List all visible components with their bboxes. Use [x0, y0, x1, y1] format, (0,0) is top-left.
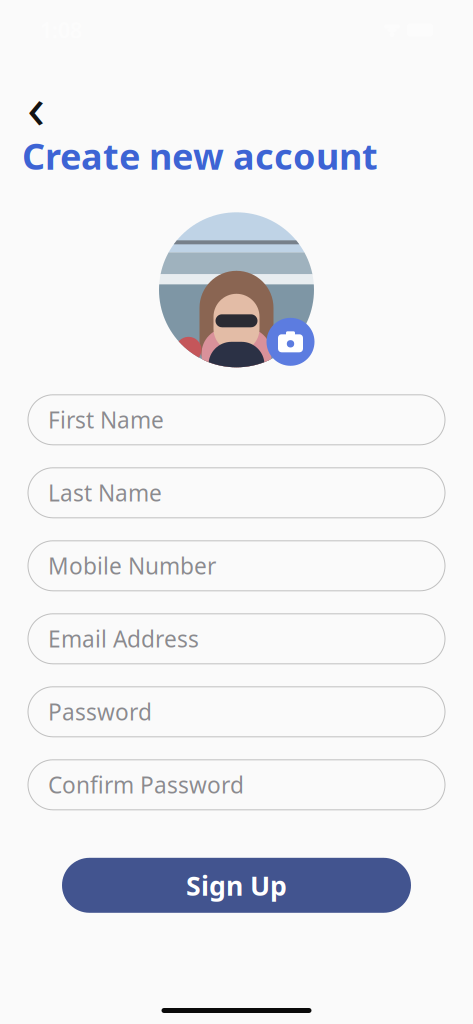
button[interactable]: Confirm Password	[28, 760, 445, 810]
staticText: Create new account	[22, 132, 378, 180]
button[interactable]: Last Name	[28, 468, 445, 518]
staticText: Password	[48, 697, 152, 727]
button[interactable]: Sign Up	[62, 858, 411, 913]
button[interactable]: Change profile photo	[266, 318, 314, 366]
button[interactable]: Back	[16, 86, 56, 126]
button[interactable]: Mobile Number	[28, 541, 445, 591]
staticText: Mobile Number	[48, 551, 216, 581]
button[interactable]: Email Address	[28, 614, 445, 664]
staticText: Sign Up	[186, 868, 287, 903]
staticText: Confirm Password	[48, 770, 244, 800]
staticText: Last Name	[48, 478, 162, 508]
button[interactable]: First Name	[28, 395, 445, 445]
staticText: First Name	[48, 405, 164, 435]
staticText: ‹	[27, 67, 45, 145]
staticText: Email Address	[48, 624, 199, 654]
button[interactable]: Password	[28, 687, 445, 737]
